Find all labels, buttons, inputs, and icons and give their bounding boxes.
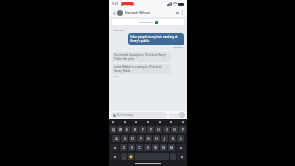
button[interactable]: G <box>145 135 152 142</box>
staticText: . <box>173 155 174 159</box>
button[interactable]: E <box>124 126 130 133</box>
button[interactable]: Z <box>120 144 127 151</box>
staticText: Hannah Wilson <box>125 10 150 15</box>
staticText: , <box>124 155 125 159</box>
staticText: K <box>172 137 174 141</box>
button[interactable]: H <box>153 135 160 142</box>
staticText: D <box>131 137 134 141</box>
button[interactable]: 🙂 <box>128 153 134 160</box>
staticText: L <box>180 137 182 141</box>
button[interactable]: Keyboard tool <box>158 120 162 124</box>
staticText: REC 0:14 <box>123 3 133 6</box>
staticText: I <box>166 128 168 132</box>
staticText: P <box>182 128 184 132</box>
button[interactable]: F <box>137 135 144 142</box>
button[interactable]: Keyboard tool <box>181 120 185 124</box>
button[interactable]: M <box>168 144 175 151</box>
button[interactable]: A <box>112 135 120 142</box>
staticText: Z <box>123 146 125 150</box>
staticText: E <box>126 128 128 132</box>
button[interactable]: V <box>144 144 151 151</box>
button[interactable]: T <box>139 126 146 133</box>
staticText: S <box>124 137 126 141</box>
staticText: T <box>142 128 144 132</box>
staticText: O <box>173 128 176 132</box>
button[interactable]: L <box>177 135 184 142</box>
button[interactable]: Shift <box>110 144 119 151</box>
button[interactable]: D <box>129 135 136 142</box>
button[interactable]: C <box>136 144 143 151</box>
staticText: G <box>147 137 150 141</box>
button[interactable]: Leslie Walker is coming to 10 mils at He… <box>112 64 171 74</box>
button[interactable]: Back <box>111 10 117 16</box>
staticText: Q <box>112 128 115 132</box>
button[interactable]: Keyboard tool <box>134 120 138 124</box>
button[interactable]: Keyboard tool <box>169 120 173 124</box>
button[interactable]: I've invited 4 people to 10 mils at Henr… <box>112 52 171 62</box>
staticText: J <box>164 137 165 141</box>
button[interactable]: R <box>131 126 138 133</box>
button[interactable]: . <box>170 153 176 160</box>
button[interactable]: Attach <box>169 113 174 118</box>
button[interactable]: W <box>117 126 123 133</box>
button[interactable]: Symbols <box>110 153 120 160</box>
staticText: V <box>147 146 149 150</box>
staticText: Color people to my hair meeting at Henry… <box>130 35 182 43</box>
button[interactable]: RCS message <box>111 112 167 118</box>
staticText: C <box>138 146 141 150</box>
staticText: U <box>157 128 160 132</box>
button[interactable]: K <box>169 135 176 142</box>
button[interactable]: B <box>152 144 159 151</box>
button[interactable]: More options <box>180 10 185 15</box>
button[interactable]: Send <box>179 112 185 118</box>
button[interactable]: N <box>160 144 167 151</box>
staticText: B <box>154 146 157 150</box>
staticText: I've invited 4 people to 10 mils at Henr… <box>114 53 169 61</box>
staticText: R <box>134 128 136 132</box>
button[interactable]: Y <box>147 126 154 133</box>
staticText: H <box>155 137 158 141</box>
button[interactable]: Enter <box>177 153 186 160</box>
staticText: A <box>115 137 118 141</box>
staticText: Leslie Walker is coming to 10 mils at He… <box>114 65 169 73</box>
button[interactable]: J <box>161 135 168 142</box>
staticText: RCS message <box>117 113 134 117</box>
button[interactable]: Video call <box>174 10 180 16</box>
staticText: W <box>119 128 122 132</box>
staticText: M <box>170 146 173 150</box>
staticText: X <box>131 146 133 150</box>
button[interactable]: U <box>155 126 162 133</box>
button[interactable]: P <box>179 126 186 133</box>
button[interactable]: Keyboard tool <box>111 120 115 124</box>
staticText: F <box>140 137 142 141</box>
staticText: 10:42 <box>113 75 119 78</box>
button[interactable]: X <box>128 144 135 151</box>
button[interactable]: , <box>121 153 127 160</box>
staticText: 9:41 <box>112 2 119 6</box>
staticText: N <box>162 146 165 150</box>
staticText: Yesterday <box>113 28 124 31</box>
button[interactable] <box>112 19 184 25</box>
button[interactable]: Keyboard tool <box>146 120 150 124</box>
button[interactable]: Attach <box>174 113 179 118</box>
staticText: Delivered <box>173 46 183 49</box>
staticText: 🙂 <box>129 155 133 159</box>
button[interactable]: Color people to my hair meeting at Henry… <box>128 33 184 45</box>
staticText: Y <box>150 128 152 132</box>
button[interactable]: Backspace <box>176 144 186 151</box>
button[interactable]: O <box>171 126 178 133</box>
button[interactable]: I <box>163 126 170 133</box>
button[interactable]: Q <box>110 126 116 133</box>
button[interactable]: Keyboard tool <box>123 120 127 124</box>
button[interactable]: S <box>121 135 128 142</box>
